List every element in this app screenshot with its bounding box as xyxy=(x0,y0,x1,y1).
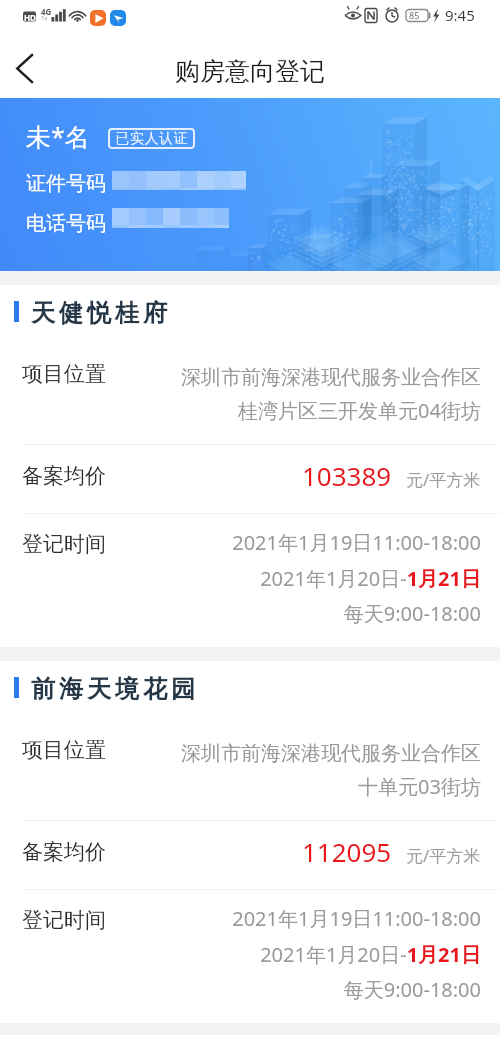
staticText: 元/平方米 xyxy=(406,844,481,867)
staticText: 元/平方米 xyxy=(406,468,481,491)
button[interactable]: 前海天境花园 xyxy=(0,661,500,714)
staticText: 2021年1月19日11:00-18:00 2021年1月20日-1月21日 每… xyxy=(232,529,481,627)
staticText: 登记时间 xyxy=(22,907,106,933)
button[interactable]: 天健悦桂府 xyxy=(0,285,500,338)
staticText: 项目位置 xyxy=(22,361,106,387)
staticText: 4G xyxy=(41,6,52,17)
staticText: 深圳市前海深港现代服务业合作区 桂湾片区三开发单元04街坊 xyxy=(181,365,481,423)
staticText: 备案均价 xyxy=(22,839,106,865)
staticText: 电话号码 xyxy=(26,211,106,236)
staticText: 已实人认证 xyxy=(115,130,188,148)
button[interactable]: 返回 xyxy=(2,46,46,90)
staticText: 112095 xyxy=(302,834,392,869)
button[interactable]: 深圳市前海深港现代服务业合作区 桂湾片区三开发单元04街坊 xyxy=(0,338,500,444)
staticText: 证件号码 xyxy=(26,171,106,196)
staticText: 85 xyxy=(409,9,420,21)
button[interactable]: 未*名 xyxy=(0,98,500,271)
staticText: 天健悦桂府 xyxy=(29,298,169,328)
staticText: 购房意向登记 xyxy=(175,56,325,87)
staticText: 未*名 xyxy=(26,119,90,153)
button[interactable]: 前海天境花园 xyxy=(0,661,500,1023)
staticText: 前海天境花园 xyxy=(29,674,197,704)
staticText: 项目位置 xyxy=(22,737,106,763)
staticText: HD xyxy=(24,12,36,23)
staticText: 103389 xyxy=(302,458,392,493)
staticText: 备案均价 xyxy=(22,463,106,489)
staticText: 登记时间 xyxy=(22,531,106,557)
button[interactable]: 天健悦桂府 xyxy=(0,285,500,647)
button[interactable]: 2021年1月19日11:00-18:00 2021年1月20日-1月21日 每… xyxy=(0,890,500,1023)
button[interactable]: 103389 xyxy=(0,445,500,513)
button[interactable]: 112095 xyxy=(0,821,500,889)
staticText: 2021年1月19日11:00-18:00 2021年1月20日-1月21日 每… xyxy=(232,905,481,1003)
staticText: 1s xyxy=(41,14,48,22)
button[interactable]: 深圳市前海深港现代服务业合作区 十单元03街坊 xyxy=(0,714,500,820)
button[interactable]: 2021年1月19日11:00-18:00 2021年1月20日-1月21日 每… xyxy=(0,514,500,647)
staticText: 9:45 xyxy=(445,5,475,25)
staticText: 深圳市前海深港现代服务业合作区 十单元03街坊 xyxy=(181,741,481,799)
